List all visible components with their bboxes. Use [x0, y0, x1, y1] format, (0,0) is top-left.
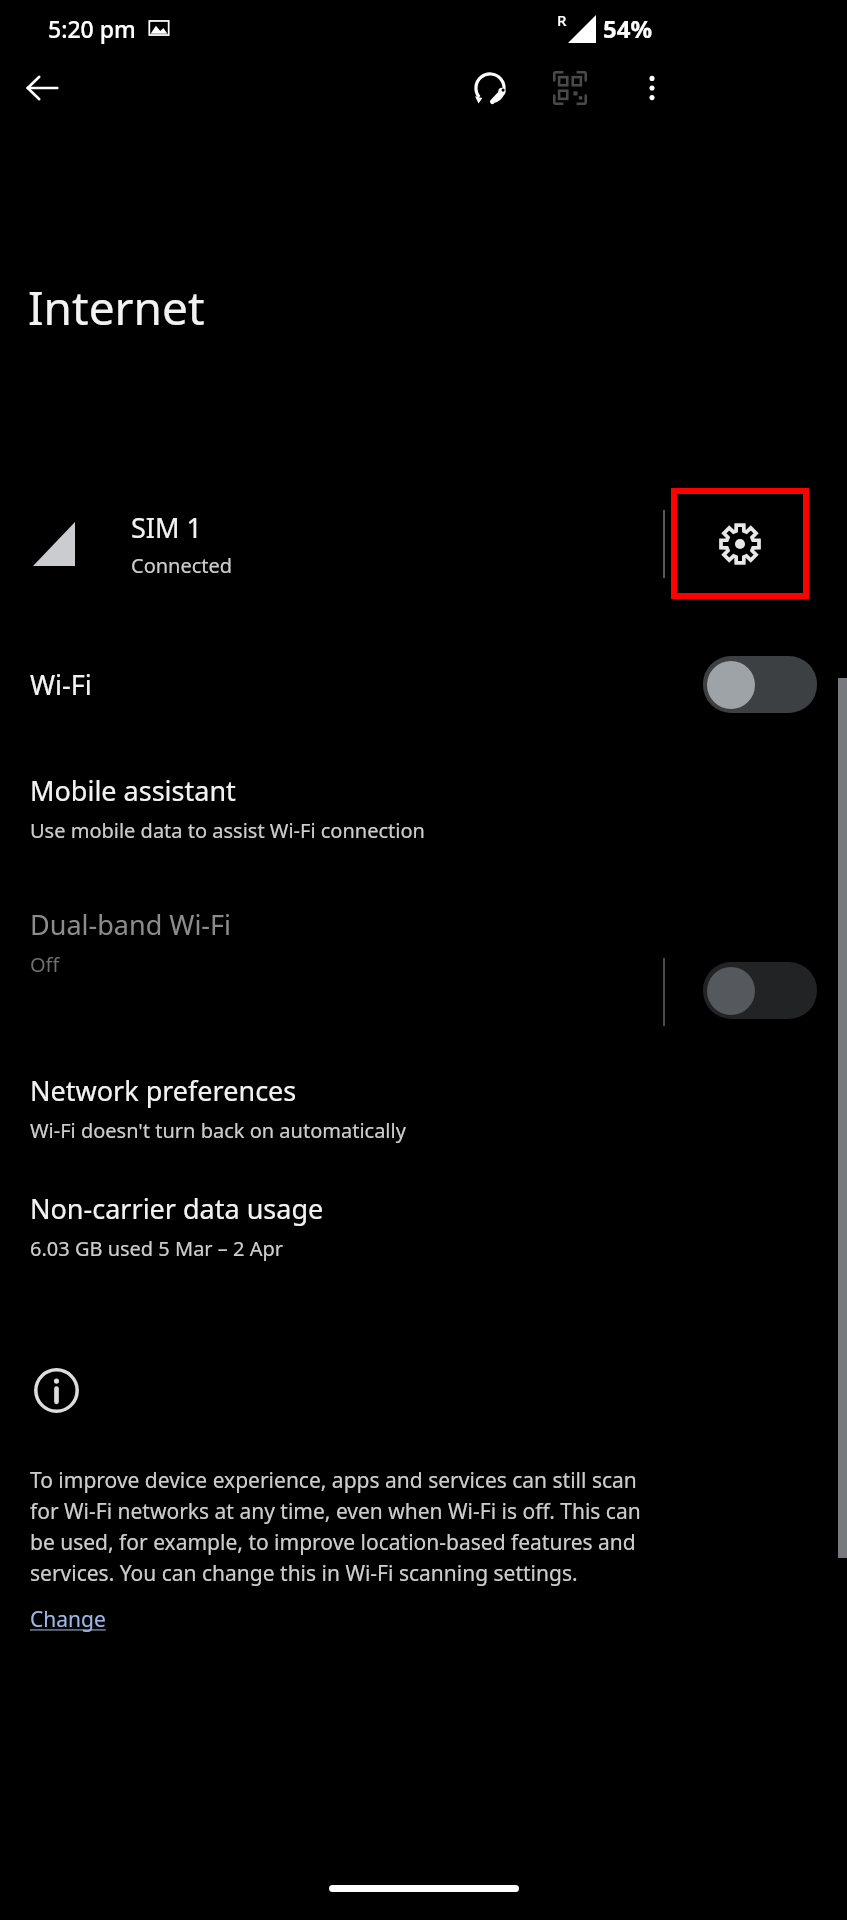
staticText: 5:20 pm	[48, 13, 136, 44]
button[interactable]: Change	[30, 1605, 106, 1634]
staticText: Dual-band Wi-Fi	[30, 906, 232, 943]
staticText: Wi-Fi	[30, 666, 92, 703]
button[interactable]: Network preferences	[0, 1050, 847, 1160]
button[interactable]: SIM 1 settings	[674, 491, 806, 596]
staticText: Non-carrier data usage	[30, 1190, 324, 1227]
button[interactable]: SIM 1	[0, 491, 847, 596]
staticText: Internet	[28, 276, 205, 339]
button[interactable]: Dual-band Wi-Fi	[0, 868, 847, 996]
staticText: Connected	[131, 552, 233, 579]
button[interactable]: Scan QR code	[538, 56, 602, 120]
button[interactable]: Toggle off	[703, 656, 817, 713]
staticText: Use mobile data to assist Wi-Fi connecti…	[30, 817, 425, 844]
button[interactable]: More options	[620, 56, 684, 120]
staticText: Mobile assistant	[30, 772, 236, 809]
staticText: SIM 1	[131, 509, 202, 546]
button[interactable]: Wi-Fi	[0, 620, 847, 748]
button[interactable]: Back	[12, 58, 72, 118]
staticText: To improve device experience, apps and s…	[30, 1466, 670, 1587]
button[interactable]: Network diagnostics	[458, 56, 522, 120]
button[interactable]: Non-carrier data usage	[0, 1168, 847, 1288]
staticText: Network preferences	[30, 1072, 297, 1109]
button[interactable]: Toggle off	[703, 962, 817, 1019]
staticText: 54%	[603, 12, 653, 45]
staticText: Wi-Fi doesn't turn back on automatically	[30, 1117, 406, 1144]
staticText: Off	[30, 951, 60, 978]
staticText: R	[557, 10, 567, 30]
staticText: 6.03 GB used 5 Mar – 2 Apr	[30, 1235, 283, 1262]
staticText: Change	[30, 1605, 106, 1634]
button[interactable]: Mobile assistant	[0, 748, 847, 868]
